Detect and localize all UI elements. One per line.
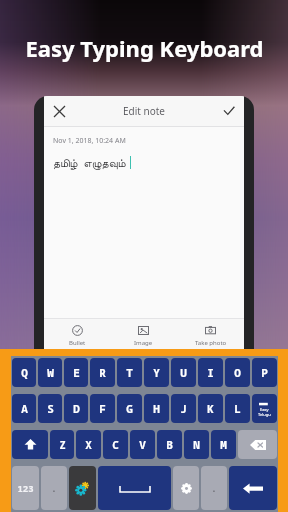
button[interactable]: Easy Telugu [252,394,277,423]
staticText: S [47,401,54,416]
staticText: . [51,482,57,494]
staticText: E [73,365,80,380]
staticText: Edit note [74,104,214,118]
button[interactable]: Keyboard settings [69,466,96,510]
button[interactable]: J [171,394,196,423]
staticText: . [211,482,217,494]
button[interactable]: O [225,358,250,387]
staticText: Telugu [258,412,271,417]
staticText: H [153,401,160,416]
staticText: K [207,401,214,416]
button[interactable]: R [90,358,115,387]
staticText: L [234,401,241,416]
button[interactable]: 123 [12,466,39,510]
staticText: தமிழ் எழுதவும் [53,155,126,170]
button[interactable]: K [198,394,223,423]
staticText: G [126,401,133,416]
button[interactable]: W [38,358,62,387]
staticText: O [234,365,241,380]
staticText: Easy [260,407,269,412]
staticText: V [139,437,146,452]
button[interactable]: M [211,430,236,459]
button[interactable]: Save note [214,96,244,126]
staticText: A [21,401,28,416]
button[interactable]: Close [44,96,74,126]
button[interactable]: Q [12,358,36,387]
staticText: Bullet [69,339,86,347]
staticText: M [220,437,227,452]
staticText: X [85,437,92,452]
button[interactable]: F [90,394,115,423]
staticText: Z [59,437,66,452]
button[interactable]: S [38,394,62,423]
button[interactable]: N [184,430,209,459]
button[interactable]: C [103,430,128,459]
staticText: N [193,437,200,452]
staticText: D [73,401,80,416]
staticText: B [166,437,173,452]
button[interactable]: V [130,430,155,459]
button[interactable]: L [225,394,250,423]
staticText: C [112,437,119,452]
button[interactable]: H [144,394,169,423]
staticText: Nov 1, 2018, 10:24 AM [53,136,126,146]
staticText: R [99,365,106,380]
button[interactable]: P [252,358,277,387]
staticText: U [180,365,187,380]
staticText: Y [153,365,160,380]
staticText: Image [134,339,153,347]
button[interactable]: Y [144,358,169,387]
staticText: F [99,401,106,416]
button[interactable]: X [76,430,101,459]
button[interactable]: U [171,358,196,387]
button[interactable]: B [157,430,182,459]
button[interactable]: Image [110,319,177,352]
staticText: I [207,365,214,380]
staticText: 123 [17,482,34,494]
button[interactable]: T [117,358,142,387]
staticText: T [126,365,133,380]
button[interactable]: Space [98,466,171,510]
staticText: P [261,365,268,380]
button[interactable]: Enter [229,466,277,510]
staticText: Take photo [195,339,227,347]
button[interactable]: . [201,466,227,510]
button[interactable]: Settings [173,466,199,510]
button[interactable]: E [64,358,88,387]
button[interactable]: . [41,466,67,510]
staticText: J [180,401,187,416]
staticText: Easy Typing Keyboard [25,33,264,63]
button[interactable]: Bullet [44,319,110,352]
button[interactable]: A [12,394,36,423]
staticText: Q [21,365,28,380]
button[interactable]: Take photo [177,319,244,352]
button[interactable]: Shift [12,430,48,459]
button[interactable]: I [198,358,223,387]
staticText: W [47,365,54,380]
button[interactable]: Backspace [238,430,277,459]
button[interactable]: G [117,394,142,423]
button[interactable]: D [64,394,88,423]
button[interactable]: Z [50,430,74,459]
